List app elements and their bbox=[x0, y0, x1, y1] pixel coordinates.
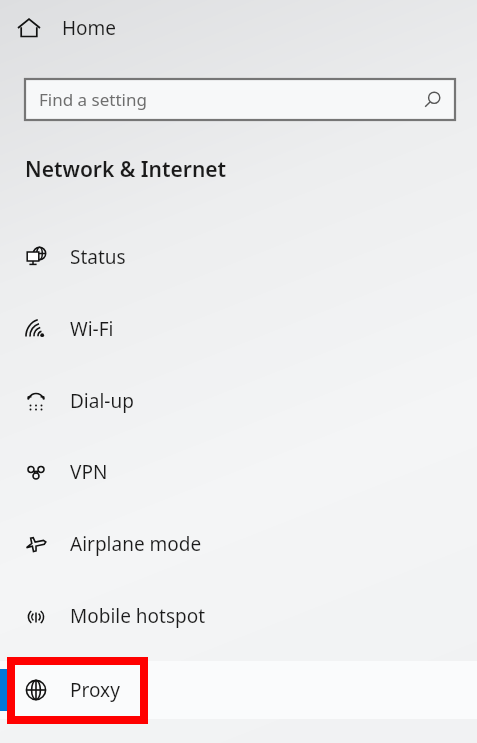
staticText: Find a setting bbox=[39, 88, 147, 111]
staticText: Wi-Fi bbox=[70, 316, 114, 342]
button[interactable]: Home bbox=[0, 0, 200, 56]
staticText: Airplane mode bbox=[70, 531, 202, 557]
staticText: Network & Internet bbox=[25, 155, 227, 184]
staticText: Dial-up bbox=[70, 388, 134, 414]
staticText: Home bbox=[62, 15, 117, 41]
button[interactable]: VPN bbox=[0, 443, 477, 501]
button[interactable]: Airplane mode bbox=[0, 515, 477, 573]
button[interactable]: Wi-Fi bbox=[0, 300, 477, 358]
button[interactable]: Mobile hotspot bbox=[0, 587, 477, 645]
staticText: Mobile hotspot bbox=[70, 603, 206, 629]
staticText: Status bbox=[70, 244, 126, 270]
button[interactable]: Dial-up bbox=[0, 372, 477, 430]
staticText: VPN bbox=[70, 459, 108, 485]
button[interactable]: Proxy bbox=[0, 661, 477, 719]
other: Search bbox=[422, 90, 442, 110]
button[interactable]: Find a setting bbox=[25, 79, 455, 120]
staticText: Proxy bbox=[70, 677, 120, 703]
button[interactable]: Status bbox=[0, 228, 477, 286]
